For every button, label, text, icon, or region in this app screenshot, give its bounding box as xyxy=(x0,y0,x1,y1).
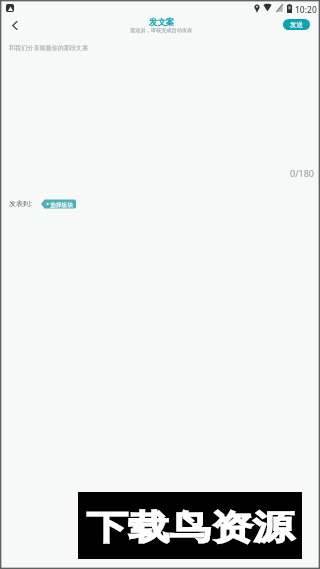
staticText: 10:20 xyxy=(295,4,317,16)
button[interactable]: 选择板块 xyxy=(41,199,76,209)
staticText: 需送后，审核完成自动发表 xyxy=(130,27,193,34)
button[interactable]: Back xyxy=(3,14,25,36)
staticText: 发文案 xyxy=(149,17,175,28)
button[interactable]: 发送 xyxy=(283,19,310,30)
staticText: 下载鸟资源 xyxy=(87,507,294,549)
staticText: 和我们分享最题你的那段文案 xyxy=(9,44,89,52)
staticText: 0/180 xyxy=(290,167,314,179)
staticText: 发送 xyxy=(290,21,303,29)
staticText: 发表到: xyxy=(9,199,32,209)
staticText: 选择板块 xyxy=(50,201,74,208)
